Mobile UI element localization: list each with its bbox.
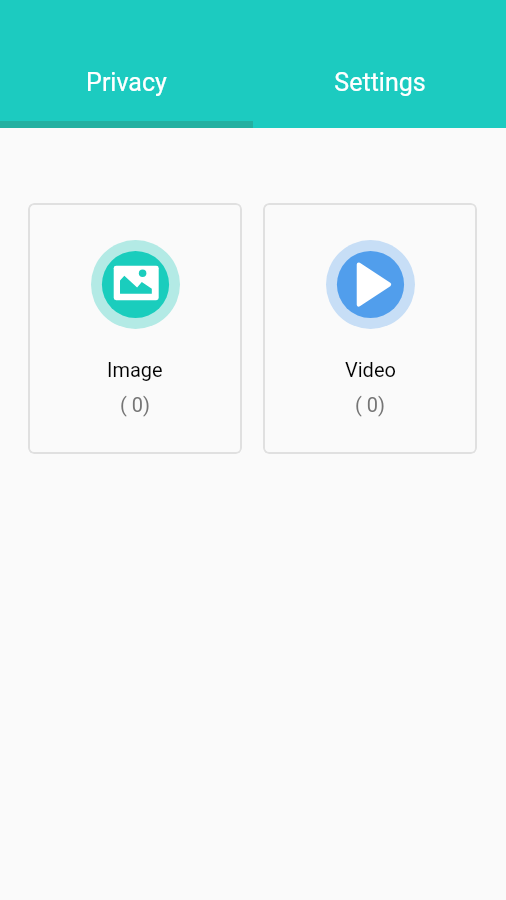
staticText: ( 0) <box>355 393 386 416</box>
button[interactable]: Settings <box>253 39 506 126</box>
button[interactable]: Privacy <box>0 39 253 126</box>
staticText: ( 0) <box>120 393 151 416</box>
staticText: Image <box>107 358 163 381</box>
other: Image <box>91 240 180 329</box>
button[interactable]: Image <box>28 203 242 454</box>
button[interactable]: Video <box>263 203 477 454</box>
staticText: Video <box>345 358 396 381</box>
staticText: Settings <box>334 68 426 97</box>
staticText: Privacy <box>86 68 167 97</box>
other: Video <box>326 240 415 329</box>
